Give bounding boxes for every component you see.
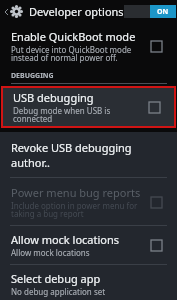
button[interactable]: Navigate up	[3, 5, 25, 18]
button[interactable]: Checkbox	[151, 240, 162, 251]
staticText: Developer options	[29, 4, 124, 19]
staticText: Enable QuickBoot mode	[11, 29, 136, 44]
button[interactable]: Checkbox	[151, 41, 162, 52]
staticText: Debug mode when USB is connected	[13, 105, 111, 124]
staticText: Select debug app	[11, 271, 101, 286]
button[interactable]: Developer options on	[124, 5, 176, 18]
button[interactable]: USB debugging	[2, 87, 175, 127]
staticText: ON	[157, 7, 169, 17]
staticText: Include option in power menu for taking …	[11, 200, 138, 219]
staticText: No debug application set	[11, 286, 106, 297]
button[interactable]: Checkbox	[149, 102, 160, 113]
button[interactable]: Enable QuickBoot mode	[0, 26, 177, 66]
button[interactable]: Allow mock locations	[0, 229, 177, 261]
staticText: USB debugging	[13, 90, 94, 105]
staticText: Revoke USB debugging author..	[11, 140, 171, 170]
button[interactable]: Select debug app	[0, 268, 177, 300]
staticText: Allow mock locations	[11, 232, 120, 247]
staticText: Put device into QuickBoot mode instead o…	[11, 44, 132, 63]
button[interactable]: Checkbox	[151, 197, 162, 208]
staticText: DEBUGGING	[11, 71, 54, 81]
staticText: Allow mock locations	[11, 247, 90, 258]
button[interactable]: Power menu bug reports	[0, 182, 177, 222]
staticText: Power menu bug reports	[11, 185, 141, 200]
button[interactable]: Revoke USB debugging author..	[0, 138, 177, 172]
